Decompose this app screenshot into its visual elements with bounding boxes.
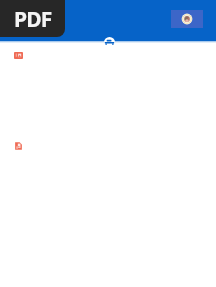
button[interactable]: State flag [171, 10, 203, 28]
staticText: PDF [14, 5, 52, 34]
button[interactable]: PDF [0, 0, 65, 37]
button[interactable]: Vehicle [104, 37, 115, 48]
